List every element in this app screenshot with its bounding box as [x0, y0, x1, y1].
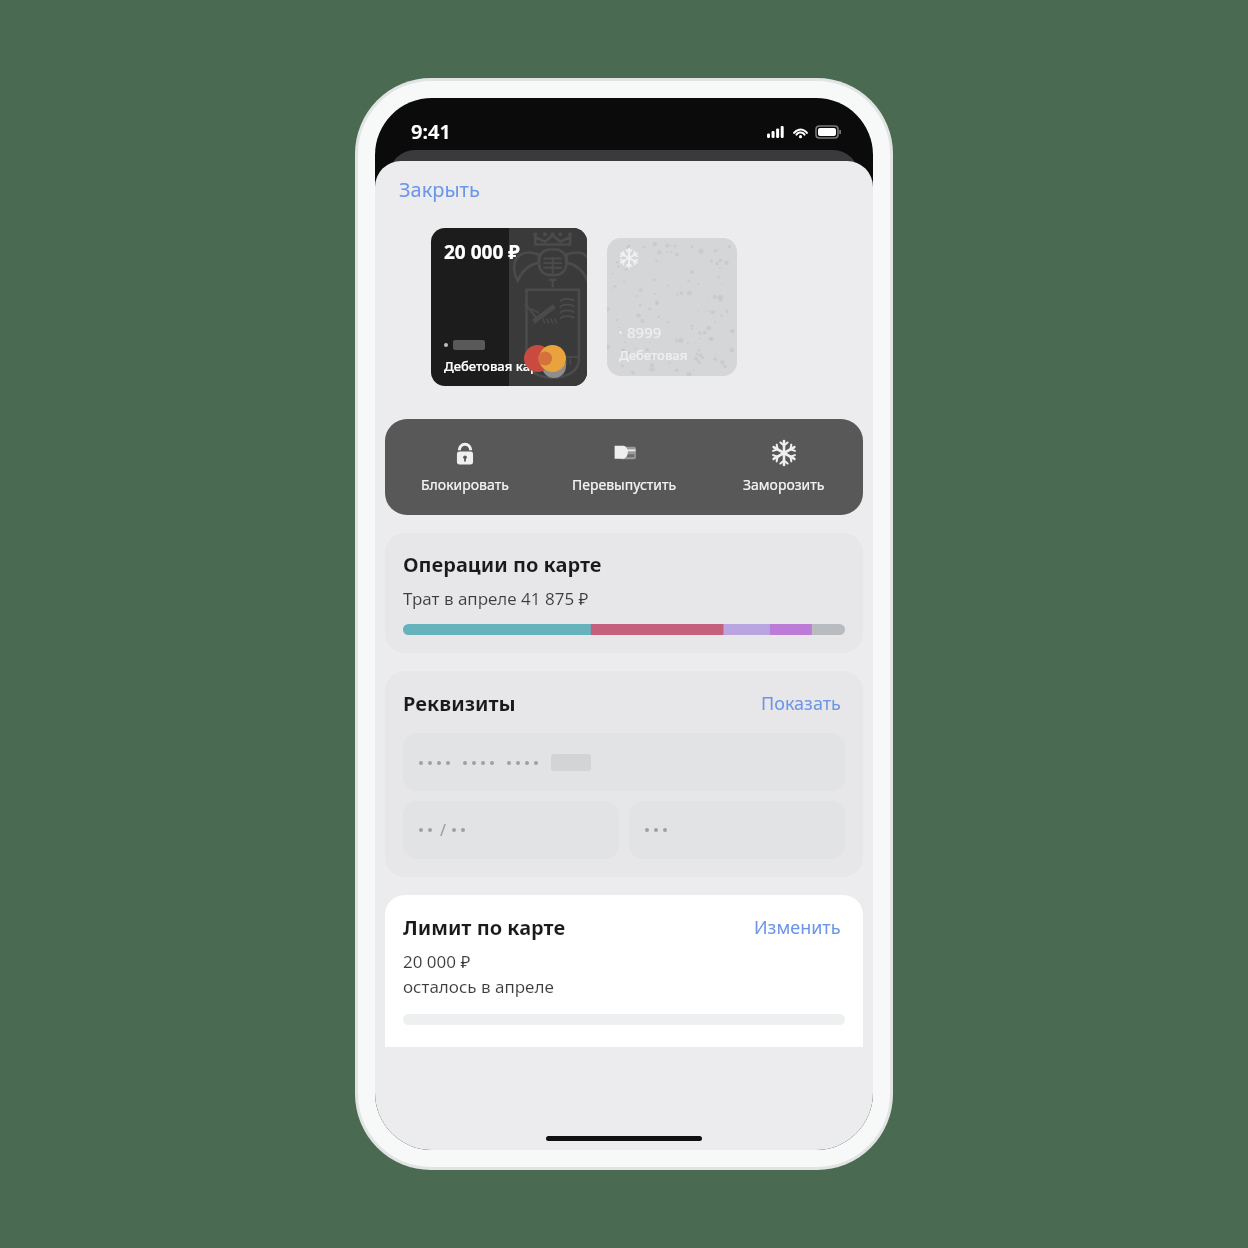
button[interactable]: Операции по карте: [385, 533, 863, 653]
staticText: 20 000 ₽: [403, 950, 471, 973]
button[interactable]: 20 000 ₽: [431, 228, 587, 386]
button[interactable]: Редактировать карту: [542, 354, 566, 378]
staticText: 8999: [627, 322, 662, 342]
button[interactable]: /: [403, 801, 619, 859]
button[interactable]: Перевыпустить: [545, 419, 704, 515]
button[interactable]: [403, 733, 845, 791]
staticText: Трат в апреле 41 875 ₽: [403, 587, 589, 610]
button[interactable]: Заморозить: [704, 419, 863, 515]
staticText: Показать: [761, 691, 841, 716]
staticText: Блокировать: [421, 475, 509, 494]
button[interactable]: Закрыть: [389, 170, 490, 209]
staticText: Закрыть: [399, 176, 480, 203]
staticText: Дебетовая карта: [444, 357, 552, 375]
button[interactable]: [629, 801, 845, 859]
staticText: Операции по карте: [403, 551, 602, 578]
staticText: Изменить: [754, 915, 841, 940]
button[interactable]: Блокировать: [385, 419, 545, 515]
staticText: Заморозить: [743, 475, 825, 494]
staticText: Перевыпустить: [572, 475, 677, 494]
button[interactable]: Показать: [757, 689, 845, 718]
staticText: осталось в апреле: [403, 975, 554, 998]
staticText: 20 000 ₽: [444, 239, 520, 265]
button[interactable]: Изменить: [750, 913, 845, 942]
staticText: Лимит по карте: [403, 914, 566, 941]
staticText: Дебетовая: [619, 346, 688, 364]
staticText: Реквизиты: [403, 690, 516, 717]
staticText: 9:41: [411, 118, 451, 145]
button[interactable]: 8999: [607, 238, 737, 376]
staticText: /: [440, 819, 446, 841]
